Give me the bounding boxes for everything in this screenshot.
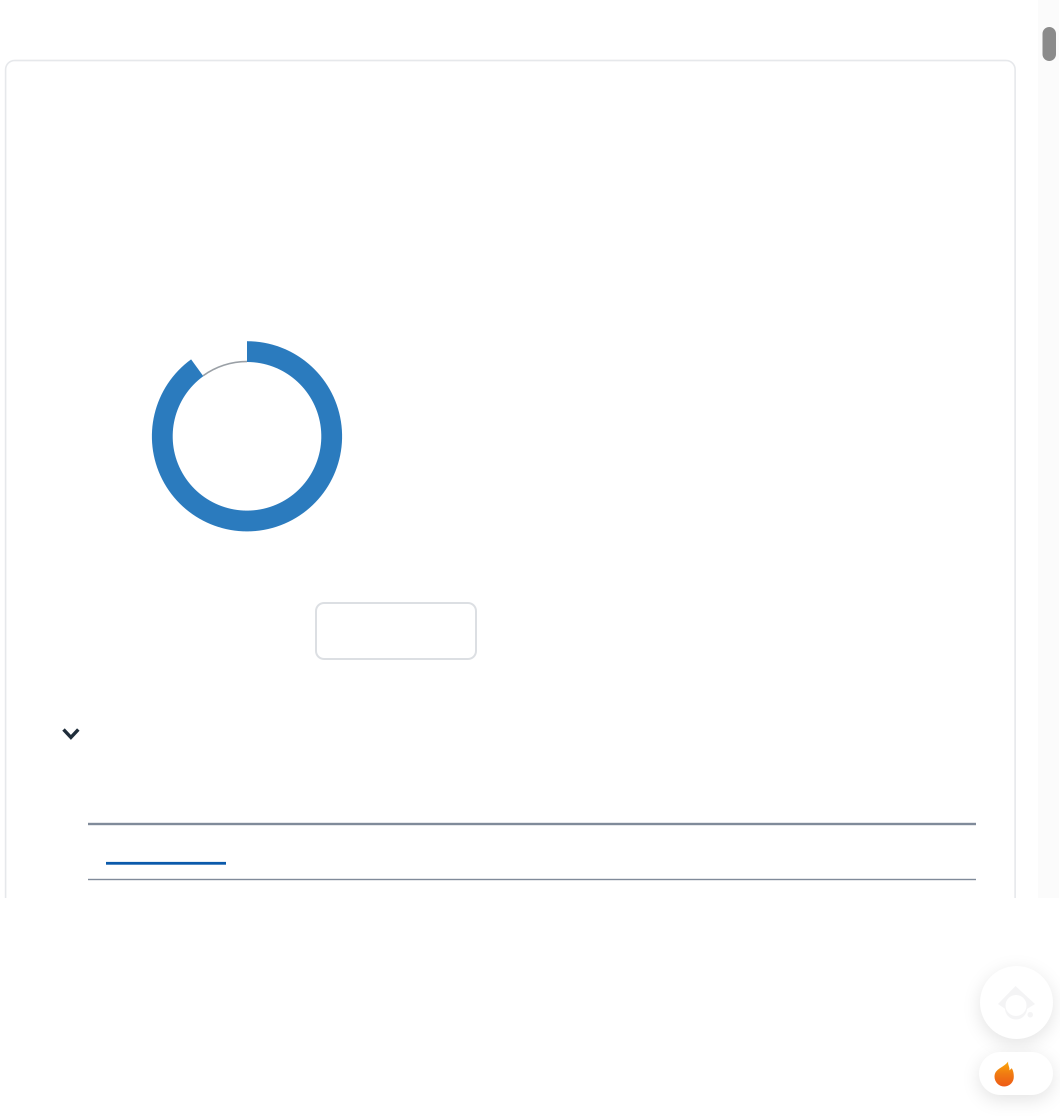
button[interactable]: Read more bbox=[106, 843, 226, 865]
button[interactable]: Streak bbox=[979, 1052, 1053, 1095]
button[interactable]: Expand section bbox=[55, 721, 86, 746]
button[interactable]: Help bbox=[980, 966, 1053, 1039]
